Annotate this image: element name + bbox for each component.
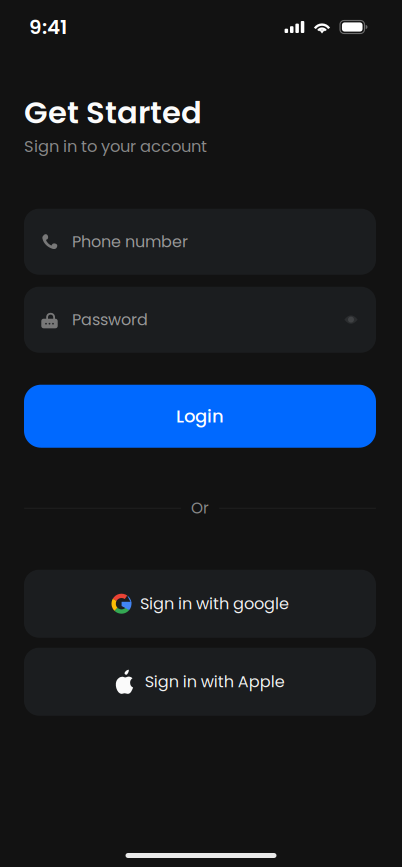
button[interactable]: Password [24, 287, 376, 353]
staticText: Sign in with Apple [145, 670, 285, 693]
button[interactable]: Sign in with Apple [24, 648, 376, 716]
staticText: Sign in with google [140, 592, 289, 615]
staticText: Login [176, 404, 224, 429]
staticText: 9:41 [29, 13, 67, 41]
staticText: Phone number [72, 230, 188, 253]
staticText: Sign in to your account [24, 135, 207, 158]
staticText: Get Started [24, 91, 202, 134]
button[interactable]: Sign in with google [24, 570, 376, 638]
button[interactable]: Phone number [24, 209, 376, 275]
staticText: Or [191, 497, 209, 519]
staticText: Password [72, 308, 148, 331]
button[interactable]: Login [24, 385, 376, 448]
